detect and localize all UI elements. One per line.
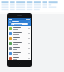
button[interactable]: Search	[11, 23, 28, 25]
button[interactable]: List item	[8, 41, 31, 46]
button[interactable]: List item	[8, 36, 31, 41]
button[interactable]: List item	[8, 26, 31, 31]
button[interactable]: Home	[18, 62, 21, 65]
button[interactable]: App bar	[8, 20, 31, 26]
button[interactable]: List item	[8, 31, 31, 36]
button[interactable]: More options	[28, 21, 30, 23]
button[interactable]: List item	[8, 46, 31, 51]
button[interactable]: Menu	[9, 21, 11, 23]
button[interactable]: List item	[8, 51, 31, 56]
button[interactable]: List item	[8, 56, 31, 60]
